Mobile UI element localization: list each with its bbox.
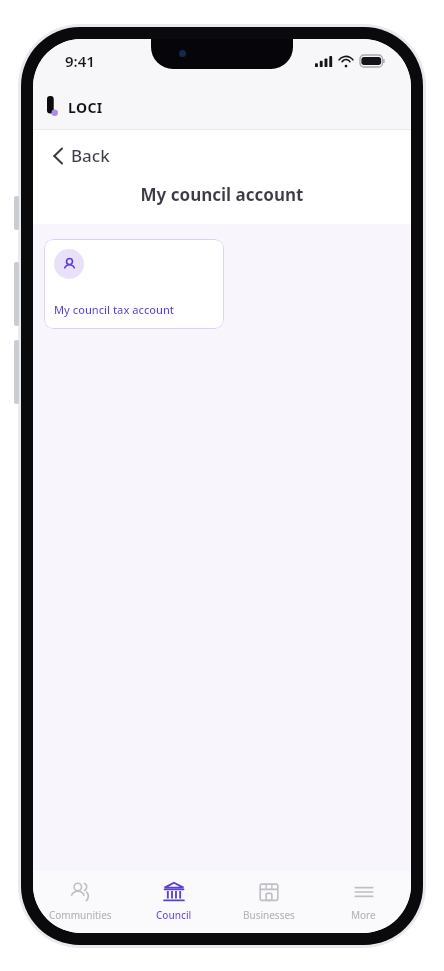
- button[interactable]: Businesses: [221, 871, 316, 933]
- staticText: LOCI: [68, 98, 103, 117]
- staticText: Council: [156, 908, 192, 922]
- staticText: My council account: [33, 183, 411, 206]
- button[interactable]: Council: [127, 871, 221, 933]
- staticText: Businesses: [243, 908, 295, 922]
- button[interactable]: More: [316, 871, 411, 933]
- staticText: My council tax account: [54, 302, 175, 317]
- button[interactable]: Back: [45, 140, 118, 171]
- staticText: More: [351, 908, 376, 922]
- button[interactable]: My council tax account: [44, 239, 224, 329]
- button[interactable]: Communities: [33, 871, 127, 933]
- staticText: Back: [71, 144, 110, 167]
- staticText: Communities: [49, 908, 112, 922]
- staticText: 9:41: [65, 51, 95, 71]
